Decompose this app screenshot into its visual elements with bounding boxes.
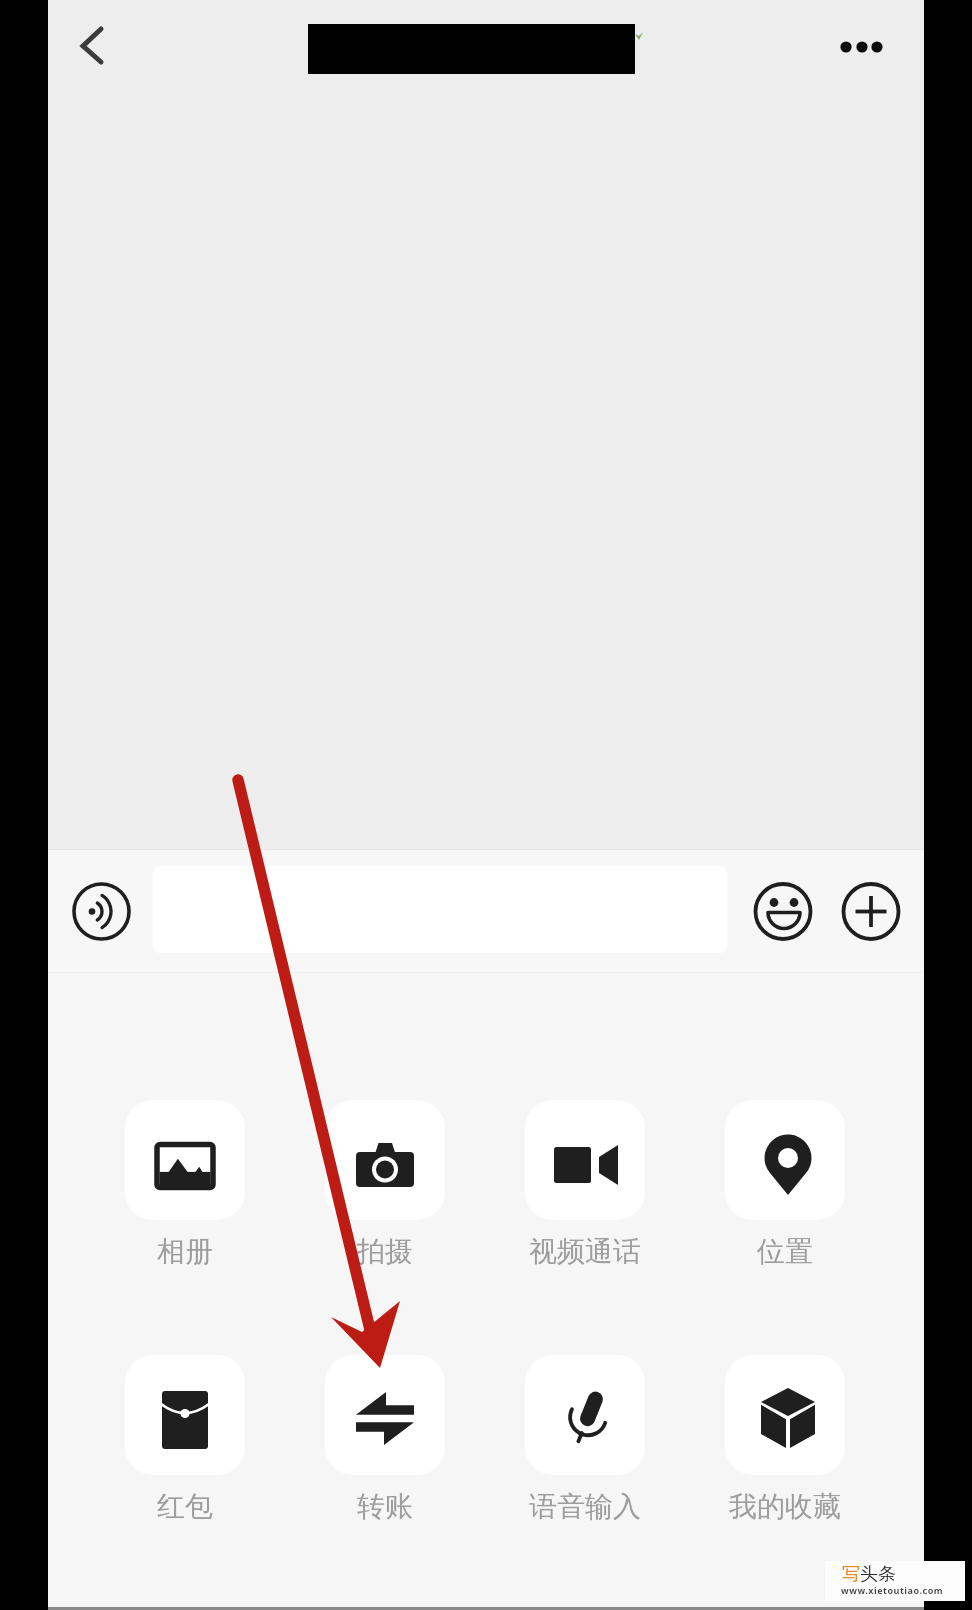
button[interactable]: 转账 — [325, 1355, 445, 1524]
button[interactable]: More options — [798, 4, 886, 92]
staticText: 转账 — [325, 1489, 445, 1524]
button[interactable]: 视频通话 — [525, 1100, 645, 1269]
staticText: 我的收藏 — [725, 1489, 845, 1524]
staticText: 红包 — [125, 1489, 245, 1524]
button[interactable]: Emoji — [750, 880, 814, 944]
staticText: 写 — [842, 1563, 860, 1586]
button[interactable]: 语音输入 — [525, 1355, 645, 1524]
staticText: 语音输入 — [525, 1489, 645, 1524]
staticText: www.xietoutiao.com — [841, 1584, 944, 1596]
button[interactable] — [153, 866, 727, 953]
button[interactable]: Voice input — [68, 880, 132, 944]
button[interactable]: 拍摄 — [325, 1100, 445, 1269]
button[interactable]: More attachments — [838, 880, 902, 944]
staticText: 位置 — [725, 1234, 845, 1269]
button[interactable]: 位置 — [725, 1100, 845, 1269]
staticText: 头条 — [860, 1563, 896, 1586]
button[interactable]: 红包 — [125, 1355, 245, 1524]
button[interactable]: 相册 — [125, 1100, 245, 1269]
staticText: 拍摄 — [325, 1234, 445, 1269]
button[interactable]: 我的收藏 — [725, 1355, 845, 1524]
staticText: 视频通话 — [525, 1234, 645, 1269]
button[interactable]: Back — [52, 2, 142, 92]
staticText: 相册 — [125, 1234, 245, 1269]
